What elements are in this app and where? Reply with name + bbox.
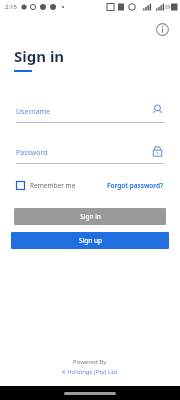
button[interactable]: Sign up [11,232,169,249]
button[interactable]: Sign in [14,208,166,225]
staticText: Sign in [80,212,101,221]
staticText: K Holdings (Pty) Ltd. [62,368,119,376]
staticText: 89% [165,4,175,11]
staticText: Remember me [30,181,76,190]
button[interactable]: Information [152,19,172,39]
staticText: Username [16,107,51,117]
button[interactable]: Password [16,145,164,164]
staticText: Forgot password? [107,181,164,190]
staticText: Sign up [79,236,102,245]
staticText: Sign in [14,46,65,66]
button[interactable]: Forgot password? [107,181,164,190]
staticText: Password [16,148,48,158]
button[interactable]: Remember me [16,181,76,190]
button[interactable]: K Holdings (Pty) Ltd. [62,368,119,376]
staticText: 2:15 [5,3,17,11]
button[interactable]: Username [16,104,164,123]
staticText: Powered By [73,358,107,366]
